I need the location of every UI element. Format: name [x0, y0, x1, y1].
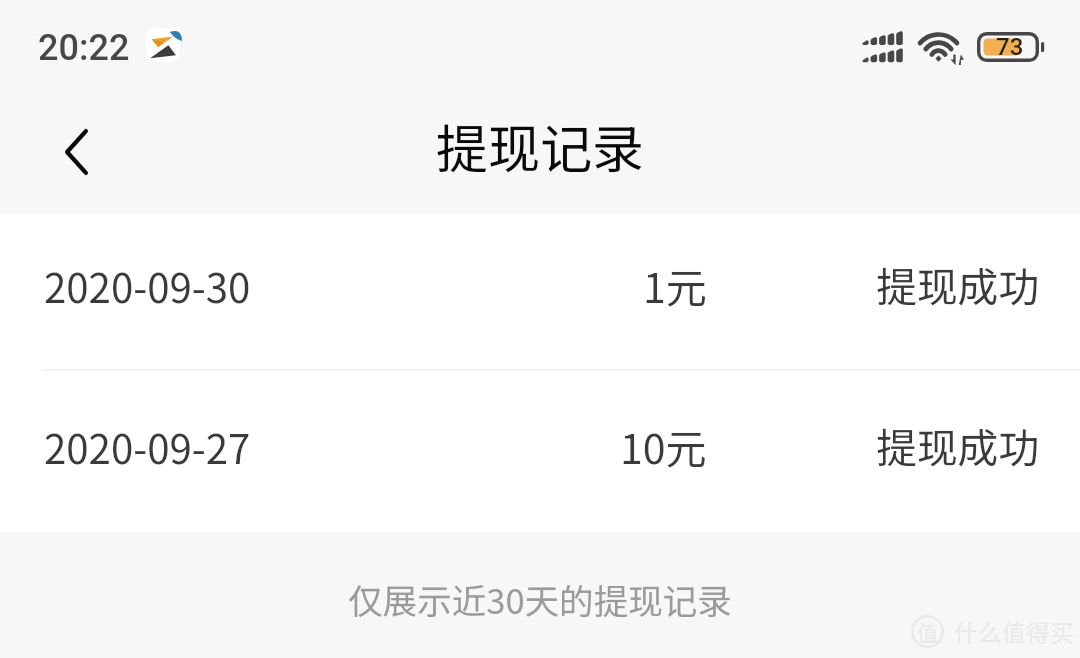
- button[interactable]: 2020-09-30: [0, 214, 1080, 369]
- staticText: 1元: [643, 255, 707, 314]
- staticText: 仅展示近30天的提现记录: [0, 574, 1080, 624]
- staticText: 73: [996, 33, 1024, 61]
- staticText: 2020-09-27: [44, 417, 251, 475]
- staticText: 提现成功: [876, 416, 1040, 475]
- staticText: 2020-09-30: [44, 256, 251, 314]
- staticText: 20:22: [38, 27, 130, 69]
- staticText: 值: [917, 617, 938, 647]
- staticText: 提现记录: [436, 108, 645, 183]
- staticText: 提现成功: [876, 255, 1040, 314]
- button[interactable]: Back: [36, 112, 116, 192]
- staticText: 什么值得买: [954, 614, 1074, 649]
- button[interactable]: 2020-09-27: [0, 371, 1080, 532]
- staticText: 10元: [620, 416, 707, 475]
